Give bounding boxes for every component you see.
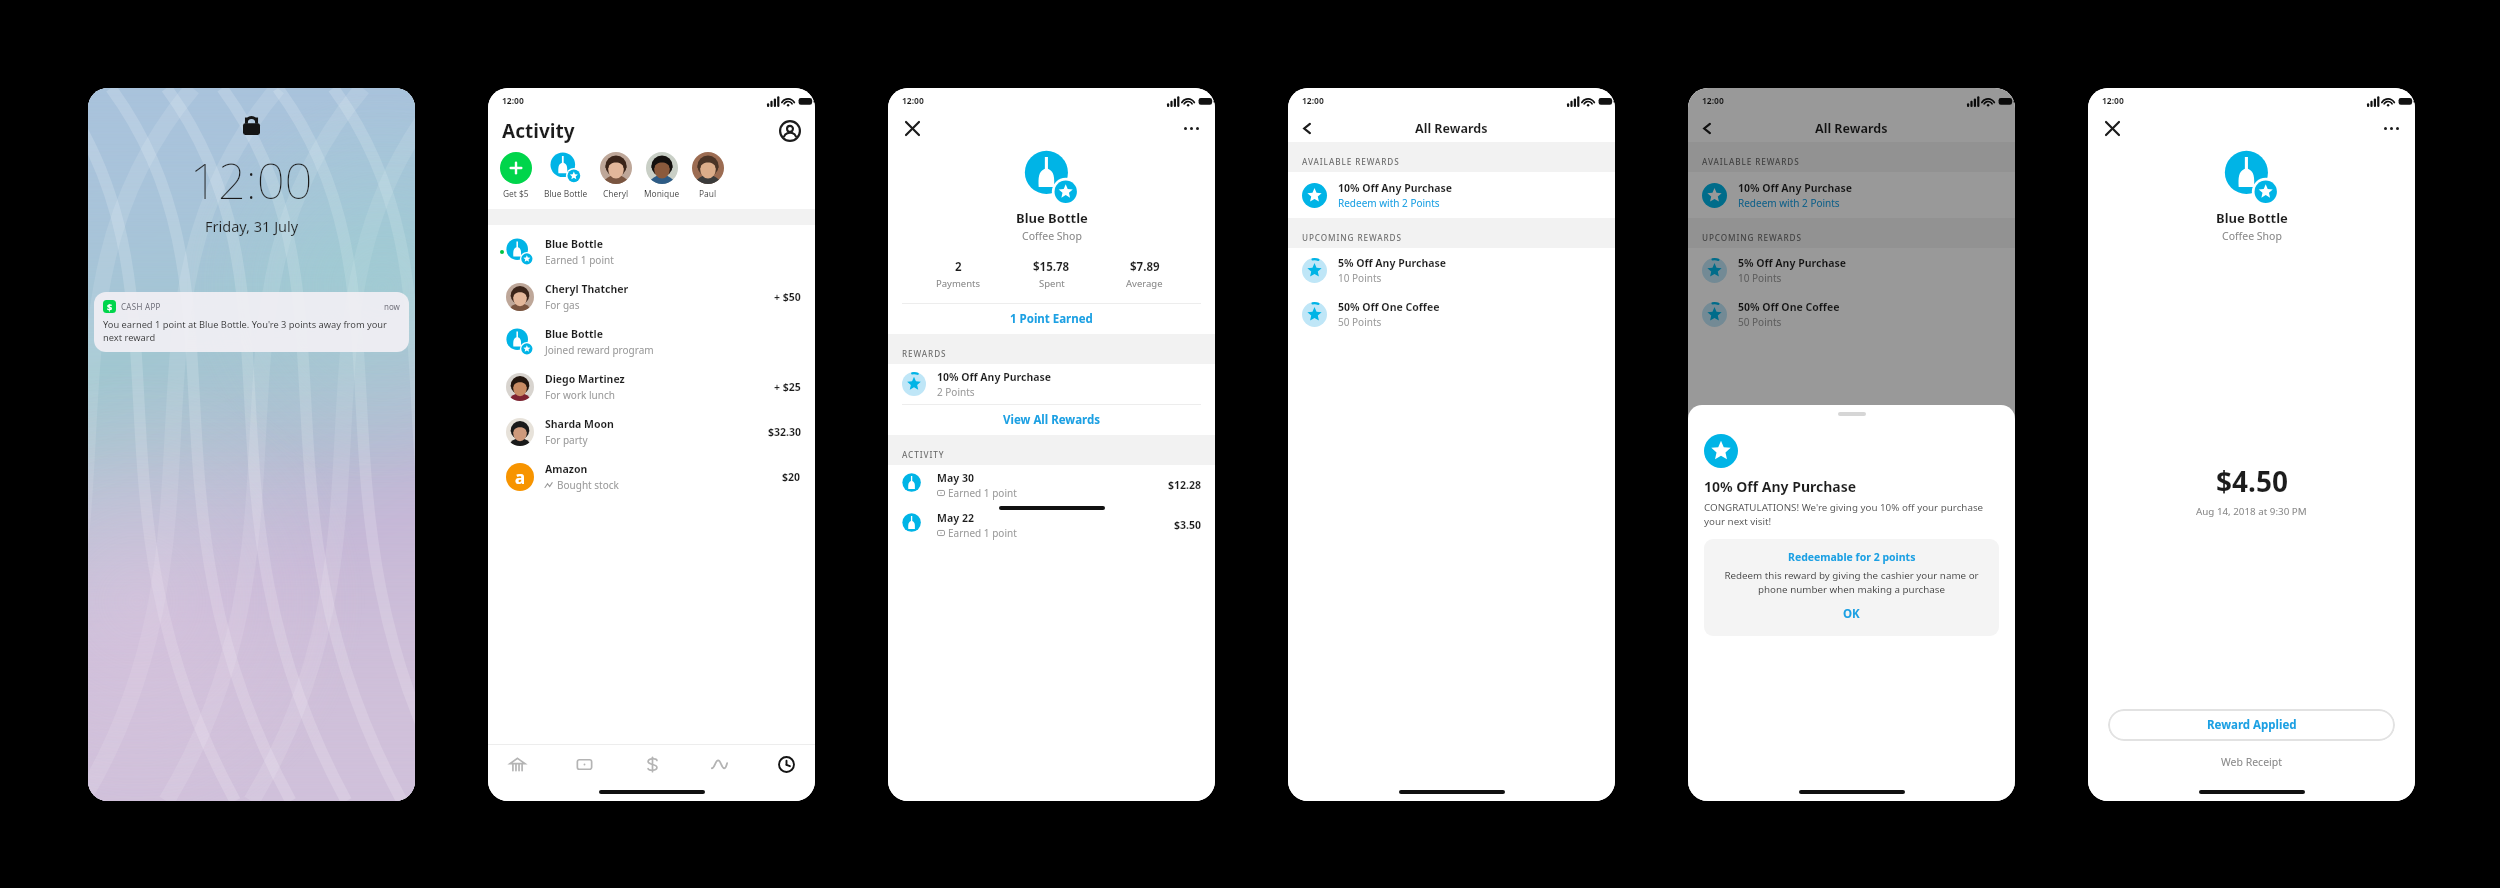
staticText: UPCOMING REWARDS <box>1302 232 1402 243</box>
staticText: Amazon <box>545 462 588 476</box>
staticText: Get $5 <box>503 188 529 199</box>
staticText: 12:00 <box>902 95 924 107</box>
staticText: Reward Applied <box>2207 717 2297 733</box>
staticText: Aug 14, 2018 at 9:30 PM <box>2196 505 2307 518</box>
staticText: CASH APP <box>121 301 161 312</box>
staticText: Bought stock <box>557 478 619 492</box>
staticText: 12:00 <box>2102 95 2124 107</box>
staticText: Earned 1 point <box>948 526 1017 540</box>
button[interactable]: Diego Martinez <box>488 364 815 409</box>
button[interactable]: May 22 <box>888 505 1215 545</box>
staticText: 2 Points <box>937 385 975 399</box>
button[interactable]: 10% Off Any Purchase <box>888 364 1215 404</box>
staticText: Blue Bottle <box>545 237 603 251</box>
staticText: Blue Bottle <box>544 188 588 199</box>
button[interactable]: 10% Off Any Purchase <box>1688 172 2015 218</box>
staticText: OK <box>1843 606 1860 622</box>
button[interactable]: 10% Off Any Purchase <box>1288 172 1615 218</box>
staticText: Paul <box>699 188 717 199</box>
staticText: 5% Off Any Purchase <box>1338 256 1447 270</box>
staticText: 1 Point Earned <box>1010 311 1093 327</box>
staticText: $7.89 <box>1130 259 1160 275</box>
staticText: For gas <box>545 298 580 312</box>
staticText: Web Receipt <box>2221 755 2283 769</box>
staticText: 2 <box>955 259 962 275</box>
button[interactable]: Pay <box>637 749 667 779</box>
staticText: Activity <box>502 118 575 144</box>
button[interactable]: Web Receipt <box>2088 755 2415 769</box>
staticText: 12:00 <box>190 147 313 214</box>
staticText: Redeem this reward by giving the cashier… <box>1716 569 1987 595</box>
staticText: Blue Bottle <box>1016 209 1088 227</box>
staticText: Coffee Shop <box>1022 229 1082 243</box>
staticText: Cheryl Thatcher <box>545 282 629 296</box>
button[interactable]: Paul <box>692 152 724 199</box>
staticText: UPCOMING REWARDS <box>1702 232 1802 243</box>
staticText: 10% Off Any Purchase <box>1338 181 1453 195</box>
staticText: All Rewards <box>1815 120 1888 137</box>
button[interactable]: Activity <box>771 749 801 779</box>
button[interactable]: More options <box>2381 118 2401 138</box>
button[interactable]: Blue Bottle <box>488 229 815 274</box>
button[interactable]: Profile <box>779 120 801 142</box>
staticText: 10% Off Any Purchase <box>1704 477 1857 496</box>
staticText: May 22 <box>937 511 974 525</box>
button[interactable]: Investing <box>704 749 734 779</box>
button[interactable]: Sharda Moon <box>488 409 815 454</box>
staticText: Earned 1 point <box>948 486 1017 500</box>
staticText: 10 Points <box>1738 271 1782 285</box>
button[interactable]: Cheryl <box>600 152 632 199</box>
staticText: You earned 1 point at Blue Bottle. You'r… <box>103 318 400 344</box>
staticText: Diego Martinez <box>545 372 625 386</box>
staticText: All Rewards <box>1415 120 1488 137</box>
staticText: $20 <box>782 470 801 484</box>
button[interactable]: a <box>488 454 815 499</box>
staticText: 10 Points <box>1338 271 1382 285</box>
button[interactable]: $ <box>94 292 409 352</box>
button[interactable]: Cheryl Thatcher <box>488 274 815 319</box>
staticText: 50% Off One Coffee <box>1738 300 1840 314</box>
staticText: + $50 <box>774 290 801 304</box>
button[interactable]: Close <box>902 118 922 138</box>
staticText: View All Rewards <box>1003 412 1101 428</box>
staticText: ACTIVITY <box>902 449 945 460</box>
staticText: 50 Points <box>1338 315 1382 329</box>
staticText: $15.78 <box>1033 259 1070 275</box>
button[interactable]: 50% Off One Coffee <box>1688 292 2015 336</box>
button[interactable]: May 30 <box>888 465 1215 505</box>
button[interactable]: Back <box>1302 118 1322 138</box>
staticText: Spent <box>1039 277 1065 290</box>
button[interactable]: 5% Off Any Purchase <box>1688 248 2015 292</box>
staticText: $3.50 <box>1174 518 1201 532</box>
button[interactable]: Get $5 <box>500 152 532 199</box>
button[interactable]: Blue Bottle <box>544 152 588 199</box>
staticText: REWARDS <box>902 348 947 359</box>
button[interactable]: Monique <box>644 152 680 199</box>
button[interactable]: 1 Point Earned <box>888 304 1215 334</box>
button[interactable]: Card <box>569 749 599 779</box>
staticText: 12:00 <box>1702 95 1724 107</box>
button[interactable]: Reward Applied <box>2108 709 2395 741</box>
staticText: $4.50 <box>2216 462 2288 500</box>
staticText: Payments <box>936 277 981 290</box>
staticText: 12:00 <box>502 95 524 107</box>
staticText: 10% Off Any Purchase <box>1738 181 1853 195</box>
button[interactable]: View All Rewards <box>888 405 1215 435</box>
staticText: $32.30 <box>768 425 801 439</box>
staticText: Redeem with 2 Points <box>1738 196 1840 210</box>
staticText: Earned 1 point <box>545 253 614 267</box>
button[interactable]: More options <box>1181 118 1201 138</box>
staticText: 5% Off Any Purchase <box>1738 256 1847 270</box>
staticText: $12.28 <box>1168 478 1201 492</box>
button[interactable]: Home <box>502 749 532 779</box>
button[interactable]: Blue Bottle <box>488 319 815 364</box>
button[interactable]: 50% Off One Coffee <box>1288 292 1615 336</box>
staticText: Cheryl <box>603 188 629 199</box>
button[interactable]: Back <box>1702 118 1722 138</box>
staticText: AVAILABLE REWARDS <box>1702 156 1800 167</box>
staticText: For work lunch <box>545 388 615 402</box>
button[interactable]: Close <box>2102 118 2122 138</box>
staticText: Blue Bottle <box>545 327 603 341</box>
button[interactable]: 5% Off Any Purchase <box>1288 248 1615 292</box>
button[interactable]: Redeemable for 2 points <box>1704 539 1999 636</box>
